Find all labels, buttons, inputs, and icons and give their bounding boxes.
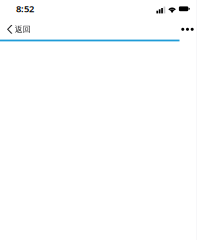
staticText: 8:52	[16, 2, 34, 15]
button[interactable]: More	[175, 20, 200, 39]
staticText: 返回	[15, 24, 31, 34]
button[interactable]: 返回	[0, 18, 39, 40]
